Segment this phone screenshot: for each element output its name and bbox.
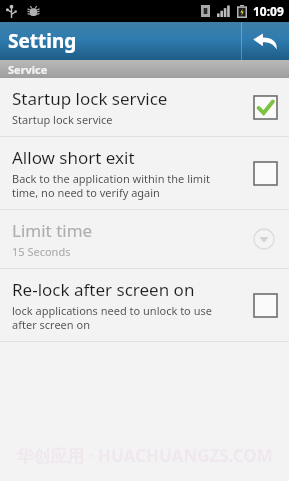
staticText: 15 Seconds	[12, 244, 71, 259]
button[interactable]: Re-lock after screen on	[0, 269, 289, 341]
staticText: 10:09	[253, 3, 284, 19]
other: Expand	[253, 228, 275, 250]
staticText: Startup lock service	[12, 87, 168, 110]
staticText: Startup lock service	[12, 112, 113, 127]
button[interactable]: Limit time	[0, 210, 289, 268]
staticText: Service	[8, 62, 48, 77]
staticText: Re-lock after screen on	[12, 278, 195, 301]
button[interactable]: Back	[241, 22, 289, 60]
staticText: Back to the application within the limit…	[12, 171, 210, 200]
staticText: lock applications need to unlock to use …	[12, 303, 212, 332]
staticText: Limit time	[12, 219, 93, 242]
staticText: Setting	[8, 28, 77, 54]
staticText: Allow short exit	[12, 146, 135, 169]
button[interactable]: Allow short exit	[0, 137, 289, 209]
button[interactable]: Startup lock service	[0, 78, 289, 136]
staticText: 华创应用 · HUACHUANGZS.COM	[16, 444, 273, 467]
